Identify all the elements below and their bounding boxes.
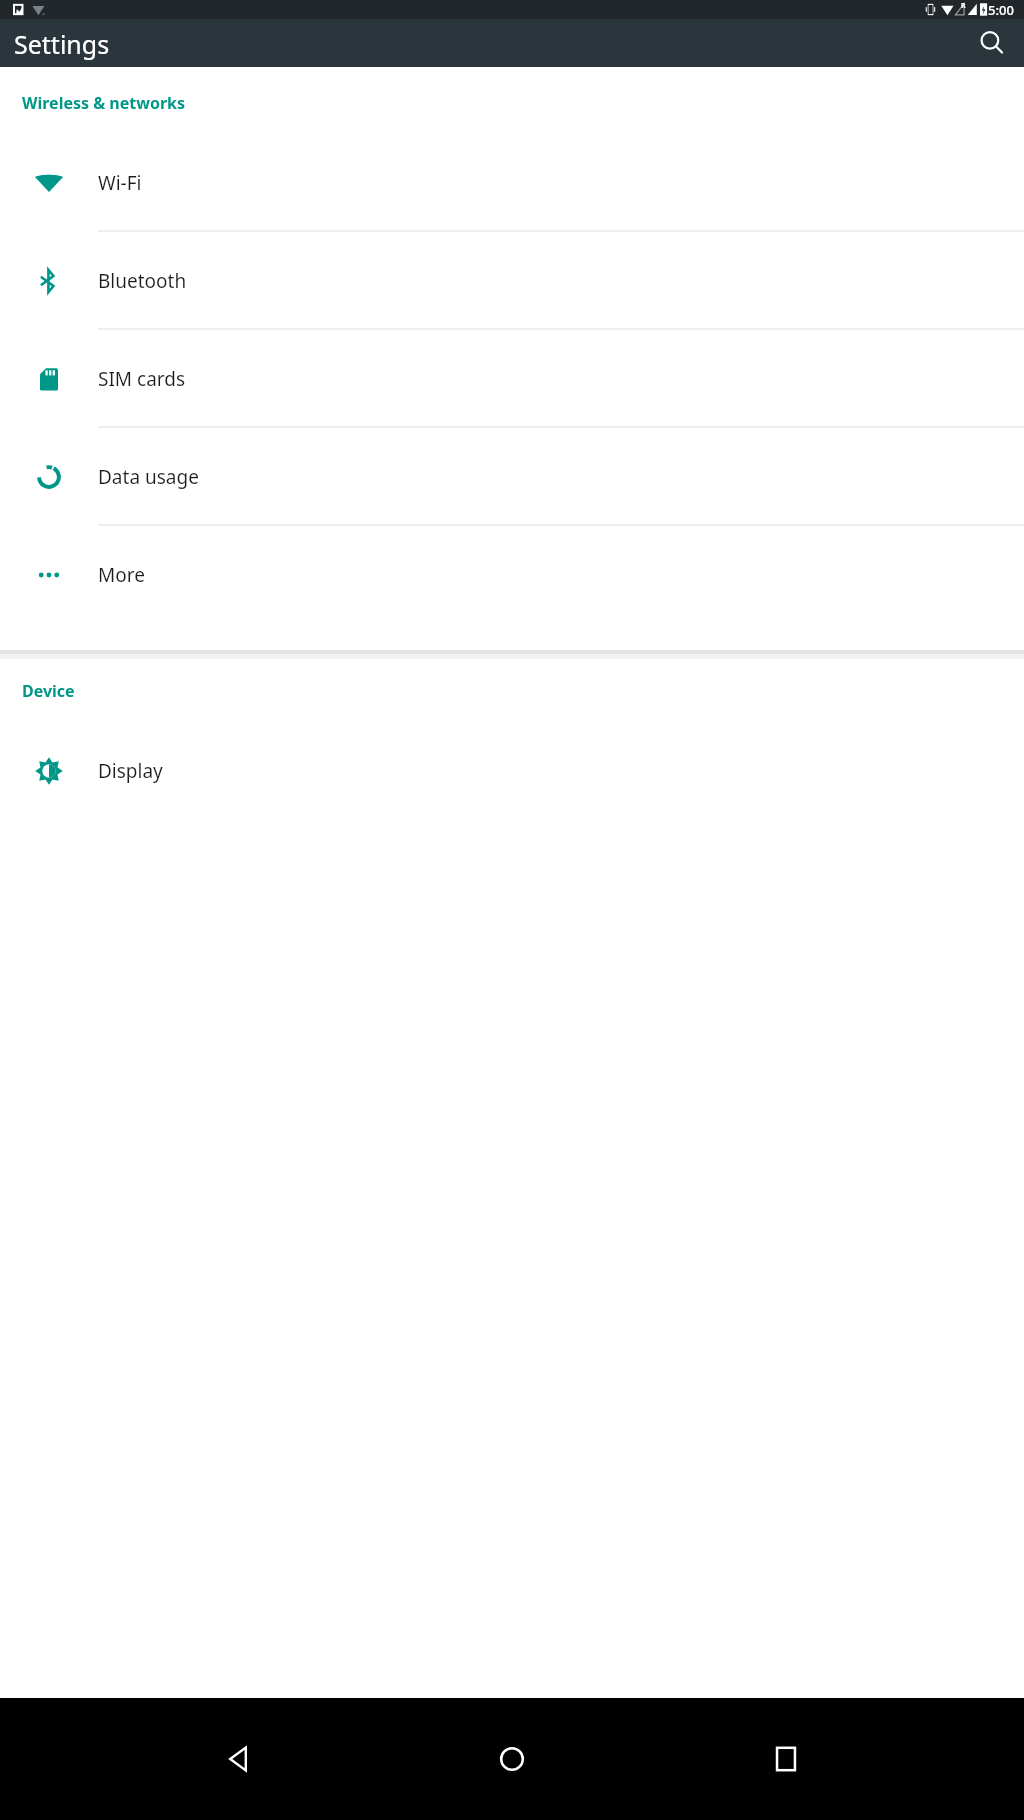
button[interactable]: Back [202,1723,274,1795]
staticText: Bluetooth [98,268,187,294]
button[interactable]: Data usage [0,428,1024,526]
staticText: SIM cards [98,366,186,392]
staticText: Display [98,758,163,784]
staticText: Wi-Fi [98,170,142,196]
button[interactable]: Display [0,722,1024,820]
button[interactable]: Bluetooth [0,232,1024,330]
button[interactable]: SIM cards [0,330,1024,428]
button[interactable]: More [0,526,1024,624]
staticText: Settings [14,27,110,61]
button[interactable]: Search [970,21,1014,65]
staticText: More [98,562,145,588]
staticText: 5:00 [988,1,1014,19]
button[interactable]: Home [476,1723,548,1795]
staticText: R [961,1,966,11]
button[interactable]: Wi-Fi [0,134,1024,232]
staticText: Device [22,680,75,702]
staticText: Wireless & networks [22,92,186,114]
button[interactable]: Recents [750,1723,822,1795]
staticText: Data usage [98,464,199,490]
